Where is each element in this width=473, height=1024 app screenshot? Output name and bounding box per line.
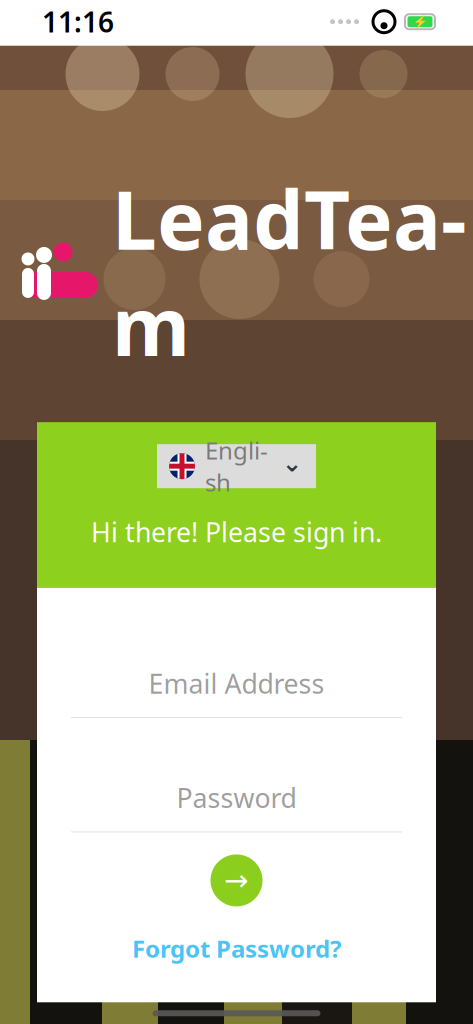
staticText: Email Address [148, 666, 324, 701]
staticText: English [205, 434, 268, 498]
staticText: ⌄ [282, 450, 302, 477]
staticText: Hi there! Please sign in. [91, 514, 382, 550]
button[interactable]: Sign in [210, 854, 262, 906]
staticText: LeadTeam [112, 166, 467, 378]
staticText: Forgot Password? [132, 932, 341, 964]
button[interactable]: Email Address [37, 666, 436, 718]
staticText: ⚡ [412, 15, 427, 29]
staticText: 11:16 [42, 3, 114, 40]
staticText: Password [176, 780, 296, 815]
button[interactable]: Password [37, 780, 436, 832]
button[interactable]: Forgot Password? [118, 926, 355, 970]
staticText: → [224, 864, 249, 897]
button[interactable]: English [157, 444, 316, 488]
